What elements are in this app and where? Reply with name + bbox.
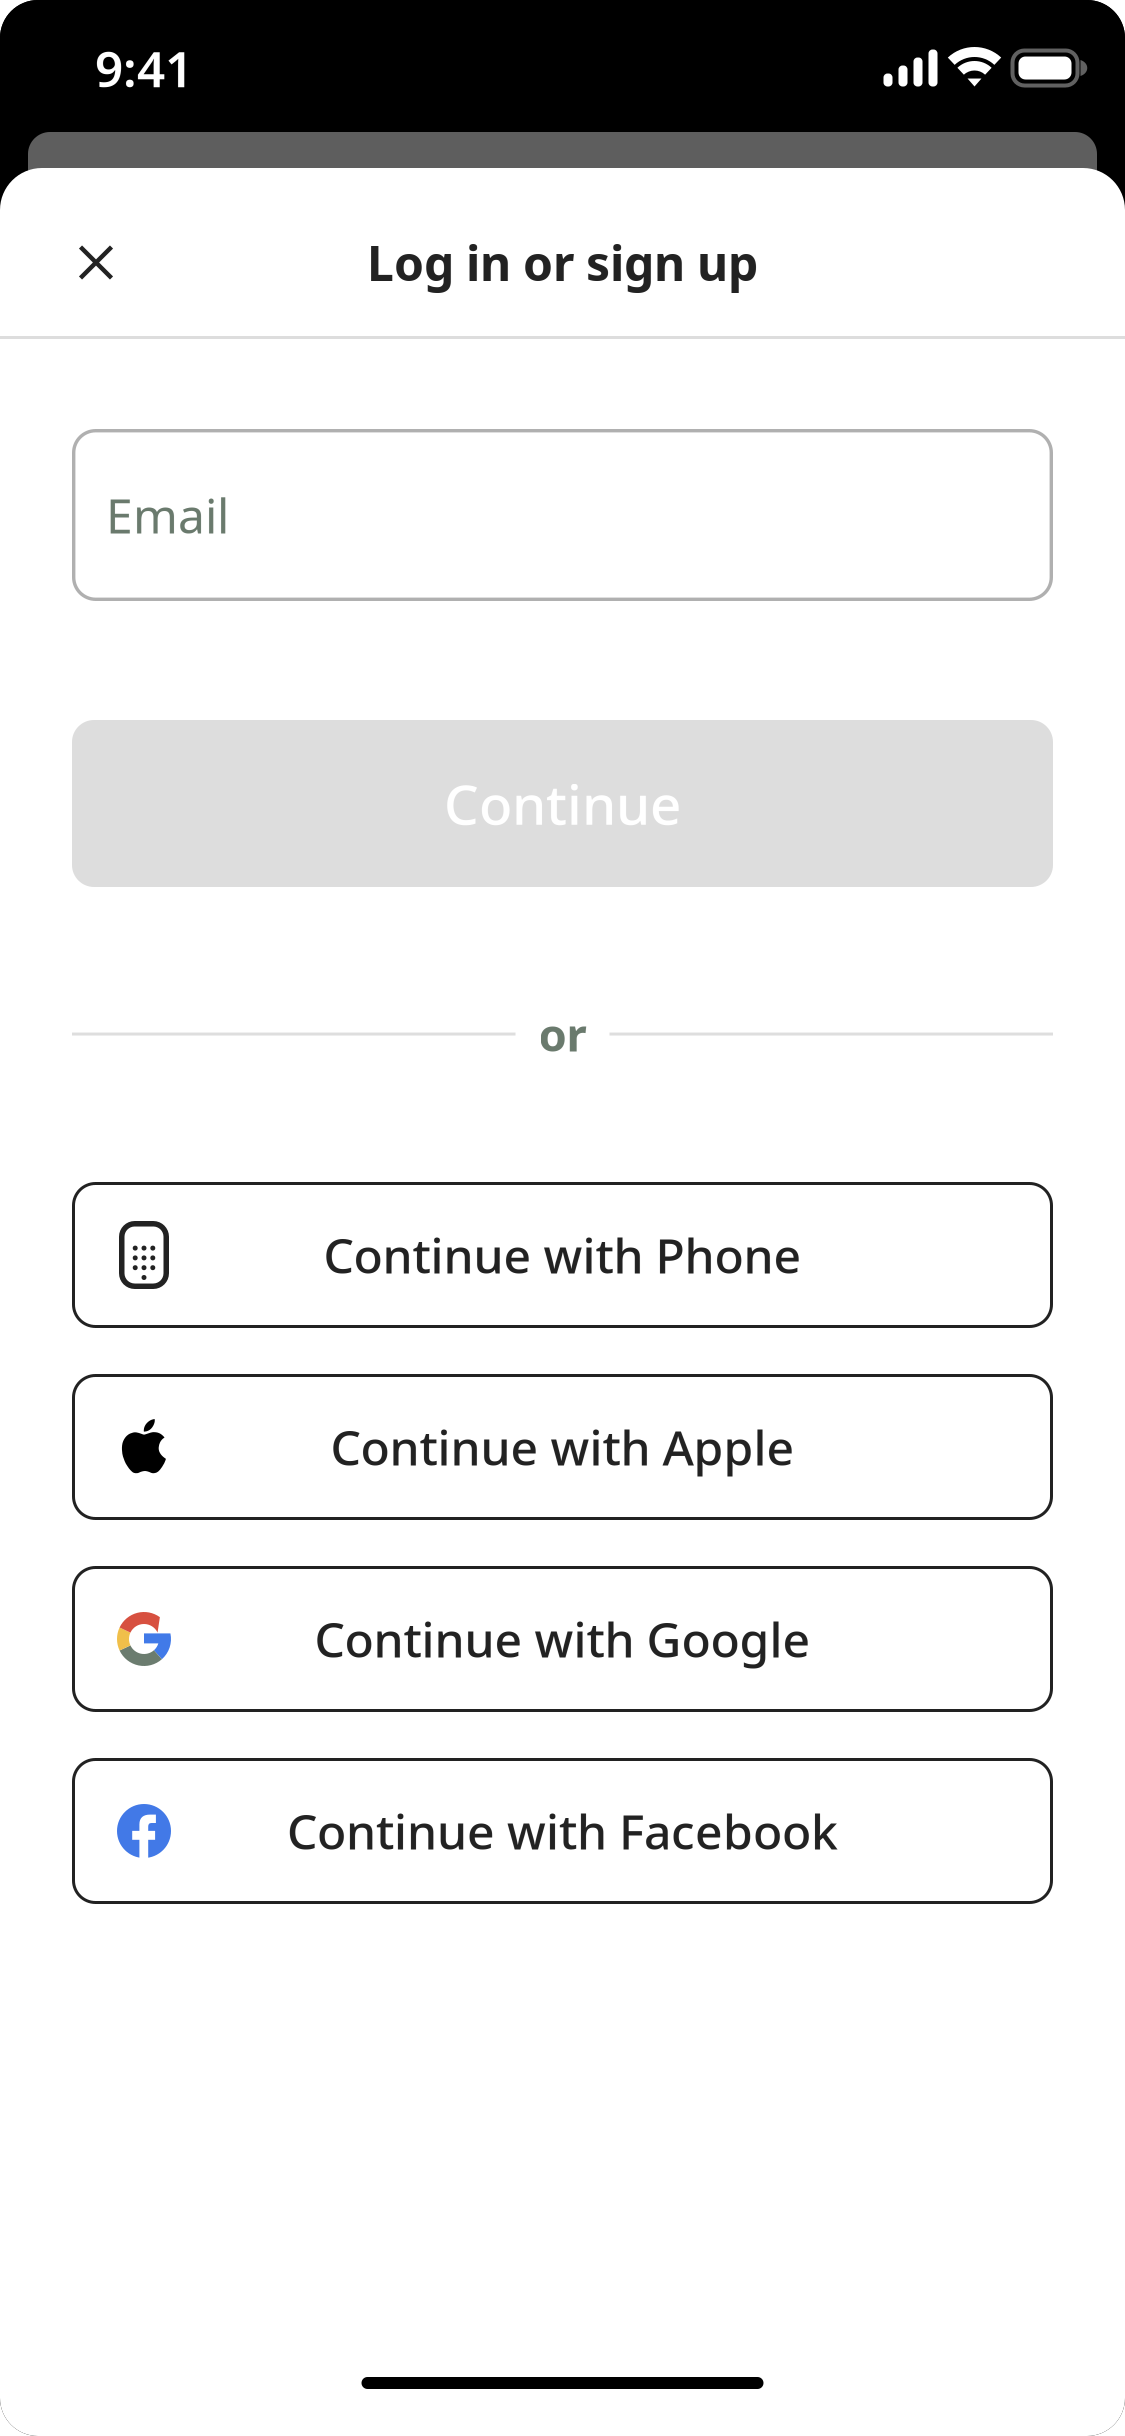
button[interactable]: Close	[57, 223, 135, 301]
button[interactable]: Continue with Apple	[72, 1374, 1053, 1520]
staticText: Continue with Apple	[330, 1415, 794, 1479]
button[interactable]: Continue with Facebook	[72, 1758, 1053, 1904]
button[interactable]: Email	[72, 429, 1053, 601]
staticText: Continue	[444, 767, 681, 840]
staticText: 9:41	[95, 35, 193, 101]
staticText: Log in or sign up	[367, 231, 758, 294]
staticText: Email	[106, 483, 229, 547]
staticText: Continue with Google	[314, 1607, 810, 1671]
button[interactable]: Continue with Google	[72, 1566, 1053, 1712]
staticText: Continue with Facebook	[287, 1799, 838, 1863]
staticText: Continue with Phone	[323, 1223, 801, 1287]
button[interactable]: Continue with Phone	[72, 1182, 1053, 1328]
staticText: or	[538, 1004, 586, 1064]
button[interactable]: Continue	[72, 720, 1053, 887]
